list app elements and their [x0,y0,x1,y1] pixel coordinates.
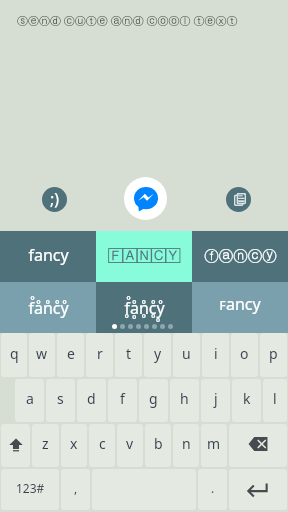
button[interactable]: e [57,333,84,377]
button[interactable]: a [15,379,44,422]
button[interactable]: z [32,424,59,467]
staticText: p [269,344,278,363]
button[interactable]: o [231,333,258,377]
staticText: i [214,344,218,363]
button[interactable]: n [173,424,199,467]
button[interactable]: h [170,379,199,422]
button[interactable]: ⓕⓐⓝⓒⓨ [192,231,288,282]
staticText: f [120,389,125,408]
staticText: 123# [16,480,45,496]
staticText: ⓢⓔⓝⓓ ⓒⓤⓣⓔ ⓐⓝⓓ ⓒⓞⓞⓛ ⓣⓔⓧⓣ [17,13,238,28]
button[interactable]: 🄵🄰🄽🄲🅈 [96,231,192,282]
button[interactable]: t [115,333,142,377]
button[interactable]: b [145,424,171,467]
staticText: 🄵🄰🄽🄲🅈 [108,250,180,263]
staticText: v [126,434,134,453]
button[interactable]: c [89,424,115,467]
button[interactable]: Send to Messenger [124,177,167,220]
button[interactable]: d [77,379,106,422]
button[interactable]: Enter [229,469,287,510]
staticText: ⓕⓐⓝⓒⓨ [204,247,277,265]
button[interactable]: g [139,379,168,422]
staticText: fancy [28,244,69,266]
staticText: h [180,389,189,408]
button[interactable]: k [232,379,261,422]
button[interactable]: q [1,333,27,377]
staticText: l [273,389,277,408]
button[interactable]: u [173,333,200,377]
button[interactable]: ꜰancy [192,282,288,333]
button[interactable]: fancy [0,231,96,282]
staticText: d [87,389,96,408]
button[interactable]: l [263,379,287,422]
button[interactable]: w [29,333,55,377]
button[interactable]: Shift [1,424,30,467]
staticText: j [214,389,218,408]
staticText: n [182,434,191,453]
staticText: c [99,434,106,453]
button[interactable]: s [46,379,75,422]
button[interactable]: f [108,379,137,422]
button[interactable]: j [201,379,230,422]
staticText: y [154,344,162,363]
button[interactable]: r [86,333,113,377]
staticText: a [26,389,34,408]
button[interactable]: p [260,333,287,377]
staticText: q [10,344,19,363]
staticText: f̥̊ḁ̊n̥̊c̥̊ẙ̥ [124,297,165,319]
staticText: k [243,389,251,408]
staticText: w [36,344,48,363]
staticText: . [211,480,215,496]
button[interactable]: Copy text [226,187,251,212]
staticText: ;) [50,188,60,210]
staticText: s [57,389,64,408]
button[interactable]: . [198,469,227,510]
staticText: e [67,344,75,363]
button[interactable]: f̊ån̊c̊ẙ [0,282,96,333]
staticText: o [240,344,249,363]
button[interactable]: Emoticon styles [42,187,67,212]
staticText: z [42,434,49,453]
button[interactable]: , [61,469,90,510]
staticText: ꜰancy [219,293,261,315]
staticText: m [207,434,221,453]
staticText: , [74,480,78,496]
button[interactable]: m [201,424,227,467]
button[interactable]: i [202,333,229,377]
button[interactable]: 123# [1,469,59,510]
button[interactable]: v [117,424,143,467]
staticText: r [97,344,103,363]
button[interactable]: y [144,333,171,377]
staticText: b [154,434,163,453]
button[interactable]: f̥̊ḁ̊n̥̊c̥̊ẙ̥ [96,282,192,333]
staticText: x [70,434,78,453]
button[interactable]: x [61,424,87,467]
staticText: t [126,344,132,363]
button[interactable]: Backspace [229,424,287,467]
staticText: f̊ån̊c̊ẙ [28,297,69,319]
staticText: g [149,389,158,408]
staticText: u [182,344,191,363]
